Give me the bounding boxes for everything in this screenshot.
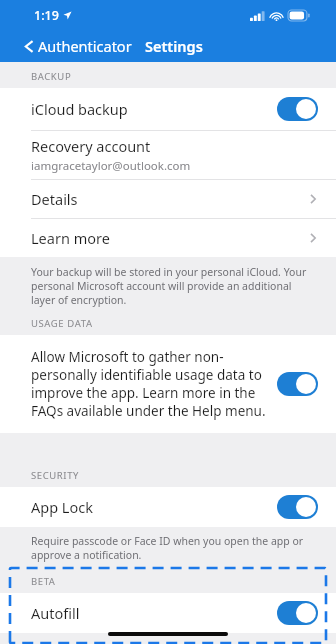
staticText: USAGE DATA — [31, 317, 93, 330]
staticText: App Lock — [31, 497, 277, 517]
button[interactable]: Allow Microsoft to gather non-personally… — [0, 335, 336, 433]
staticText: Allow Microsoft to gather non-personally… — [31, 348, 269, 420]
button[interactable]: App Lock — [0, 487, 336, 527]
button[interactable]: Toggle setting — [277, 372, 318, 396]
button[interactable]: Recovery account — [0, 131, 336, 179]
staticText: Autofill — [31, 603, 277, 623]
button[interactable]: Toggle setting — [277, 601, 318, 625]
staticText: BACKUP — [31, 70, 72, 83]
staticText: 1:19 — [34, 7, 59, 24]
button[interactable]: Learn more — [0, 219, 336, 257]
staticText: Settings — [145, 36, 203, 56]
button[interactable]: Autofill — [0, 593, 336, 633]
staticText: Your backup will be stored in your perso… — [31, 265, 314, 307]
staticText: BETA — [31, 575, 56, 588]
staticText: Require passcode or Face ID when you ope… — [31, 534, 314, 562]
button[interactable]: Authenticator — [0, 34, 138, 58]
staticText: SECURITY — [31, 469, 80, 482]
button[interactable]: Toggle setting — [277, 97, 318, 121]
staticText: Details — [31, 189, 78, 209]
staticText: Recovery account — [31, 136, 151, 156]
button[interactable]: Details — [0, 180, 336, 218]
button[interactable]: iCloud backup — [0, 88, 336, 130]
staticText: Authenticator — [38, 36, 132, 56]
button[interactable]: Toggle setting — [277, 495, 318, 519]
staticText: iamgracetaylor@outlook.com — [31, 158, 191, 174]
staticText: iCloud backup — [31, 99, 277, 119]
staticText: Learn more — [31, 228, 110, 248]
